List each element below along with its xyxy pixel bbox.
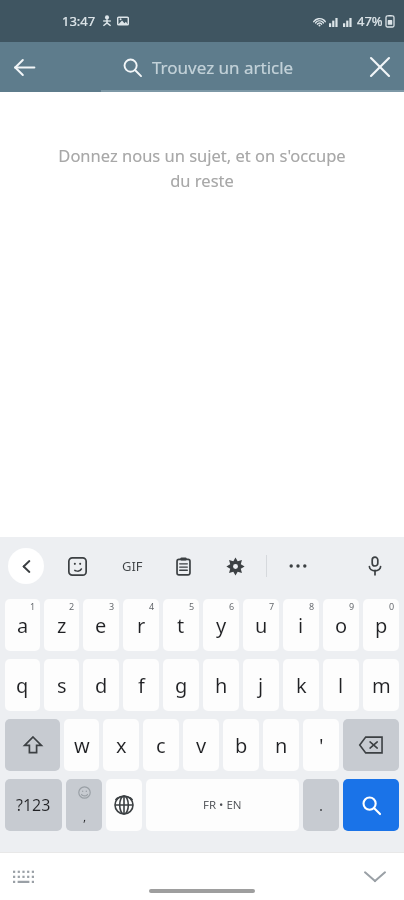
- button[interactable]: a: [5, 599, 40, 651]
- staticText: 0: [389, 600, 395, 612]
- staticText: 47%: [357, 12, 383, 30]
- staticText: 3: [109, 600, 115, 612]
- button[interactable]: Back: [8, 548, 44, 584]
- button[interactable]: Shift: [5, 719, 60, 771]
- staticText: x: [116, 732, 127, 759]
- button[interactable]: e: [83, 599, 119, 651]
- staticText: b: [235, 732, 248, 759]
- staticText: p: [375, 612, 388, 639]
- staticText: 2: [69, 600, 75, 612]
- button[interactable]: GIF: [112, 546, 152, 586]
- staticText: Donnez nous un sujet, et on s'occupe du …: [20, 144, 384, 191]
- button[interactable]: g: [163, 659, 199, 711]
- staticText: 8: [309, 600, 315, 612]
- staticText: g: [175, 672, 188, 699]
- button[interactable]: i: [283, 599, 319, 651]
- staticText: v: [196, 732, 207, 759]
- button[interactable]: o: [323, 599, 359, 651]
- button[interactable]: Clear search: [356, 43, 404, 91]
- button[interactable]: c: [143, 719, 179, 771]
- button[interactable]: Emoji: [66, 779, 102, 831]
- button[interactable]: ': [303, 719, 339, 771]
- button[interactable]: Settings: [218, 549, 252, 583]
- staticText: c: [156, 732, 166, 759]
- staticText: e: [95, 612, 107, 639]
- staticText: 7: [269, 600, 275, 612]
- button[interactable]: h: [203, 659, 239, 711]
- button[interactable]: .: [303, 779, 339, 831]
- staticText: n: [275, 732, 288, 759]
- staticText: a: [17, 612, 29, 639]
- staticText: ': [319, 732, 324, 759]
- staticText: 5: [189, 600, 195, 612]
- button[interactable]: x: [103, 719, 139, 771]
- staticText: j: [258, 672, 264, 699]
- staticText: z: [57, 612, 67, 639]
- button[interactable]: FR • EN: [146, 779, 299, 831]
- staticText: k: [296, 672, 307, 699]
- staticText: ?123: [16, 794, 51, 816]
- button[interactable]: j: [243, 659, 279, 711]
- button[interactable]: r: [123, 599, 159, 651]
- button[interactable]: y: [203, 599, 239, 651]
- button[interactable]: Trouvez un article: [123, 56, 294, 79]
- button[interactable]: Clipboard: [166, 549, 200, 583]
- staticText: y: [216, 612, 227, 639]
- button[interactable]: t: [163, 599, 199, 651]
- button[interactable]: Search: [343, 779, 399, 831]
- button[interactable]: p: [363, 599, 399, 651]
- button[interactable]: b: [223, 719, 259, 771]
- staticText: w: [74, 732, 90, 759]
- staticText: f: [138, 672, 145, 699]
- staticText: s: [57, 672, 67, 699]
- button[interactable]: Switch keyboard: [6, 859, 40, 893]
- staticText: u: [255, 612, 268, 639]
- staticText: t: [177, 612, 185, 639]
- staticText: 13:47: [62, 12, 96, 30]
- staticText: d: [95, 672, 108, 699]
- button[interactable]: s: [44, 659, 79, 711]
- staticText: l: [338, 672, 344, 699]
- button[interactable]: f: [123, 659, 159, 711]
- button[interactable]: q: [5, 659, 40, 711]
- button[interactable]: v: [183, 719, 219, 771]
- staticText: m: [372, 672, 391, 699]
- staticText: i: [298, 612, 304, 639]
- button[interactable]: w: [64, 719, 99, 771]
- staticText: 4: [149, 600, 155, 612]
- staticText: Trouvez un article: [152, 56, 294, 79]
- button[interactable]: n: [263, 719, 299, 771]
- button[interactable]: Stickers: [60, 549, 94, 583]
- button[interactable]: Change language: [106, 779, 142, 831]
- button[interactable]: Voice input: [358, 549, 392, 583]
- button[interactable]: u: [243, 599, 279, 651]
- button[interactable]: Back: [0, 43, 48, 91]
- staticText: q: [16, 672, 29, 699]
- staticText: o: [335, 612, 348, 639]
- button[interactable]: d: [83, 659, 119, 711]
- staticText: .: [319, 795, 324, 815]
- staticText: 1: [30, 600, 36, 612]
- button[interactable]: More options: [281, 549, 315, 583]
- staticText: 9: [349, 600, 355, 612]
- staticText: r: [137, 612, 146, 639]
- staticText: h: [215, 672, 228, 699]
- button[interactable]: Hide keyboard: [356, 857, 394, 895]
- button[interactable]: l: [323, 659, 359, 711]
- button[interactable]: z: [44, 599, 79, 651]
- button[interactable]: m: [363, 659, 399, 711]
- staticText: 6: [229, 600, 235, 612]
- button[interactable]: ?123: [5, 779, 62, 831]
- staticText: FR • EN: [203, 797, 242, 813]
- staticText: GIF: [122, 557, 143, 575]
- button[interactable]: Backspace: [343, 719, 399, 771]
- button[interactable]: k: [283, 659, 319, 711]
- staticText: ,: [83, 808, 87, 824]
